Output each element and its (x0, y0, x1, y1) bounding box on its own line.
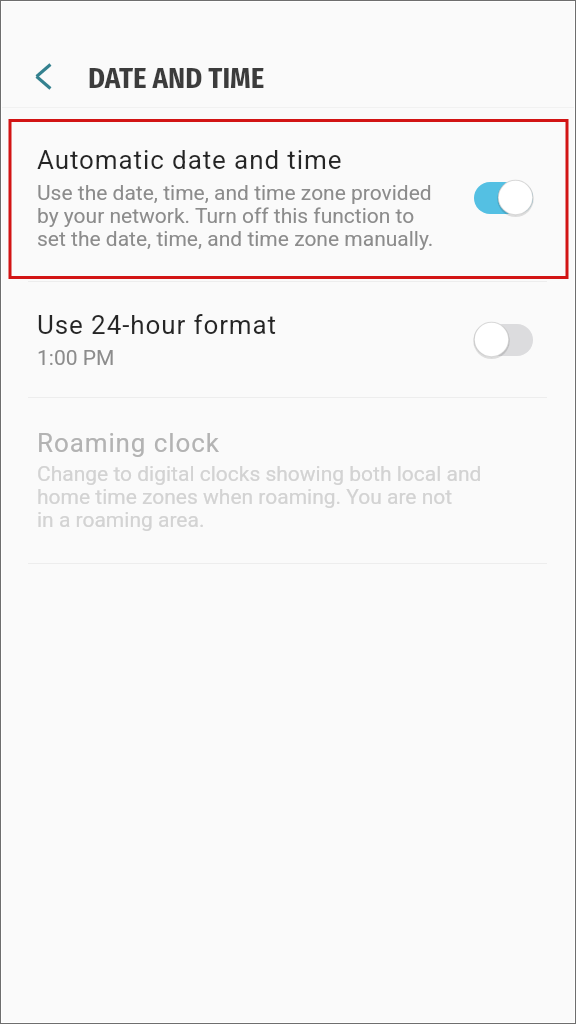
button[interactable]: Switch on (473, 179, 534, 216)
button[interactable]: Automatic date and time (0, 122, 576, 277)
button[interactable]: Use 24-hour format (0, 280, 576, 396)
staticText: Roaming clock (37, 428, 220, 458)
button[interactable]: Navigate up (20, 53, 66, 99)
staticText: 1:00 PM (37, 346, 115, 371)
button[interactable]: Switch off (473, 321, 534, 358)
staticText: Use the date, time, and time zone provid… (37, 181, 434, 252)
staticText: Change to digital clocks showing both lo… (37, 462, 482, 533)
staticText: Automatic date and time (37, 145, 343, 175)
staticText: DATE AND TIME (88, 61, 265, 95)
staticText: Use 24-hour format (37, 310, 277, 340)
